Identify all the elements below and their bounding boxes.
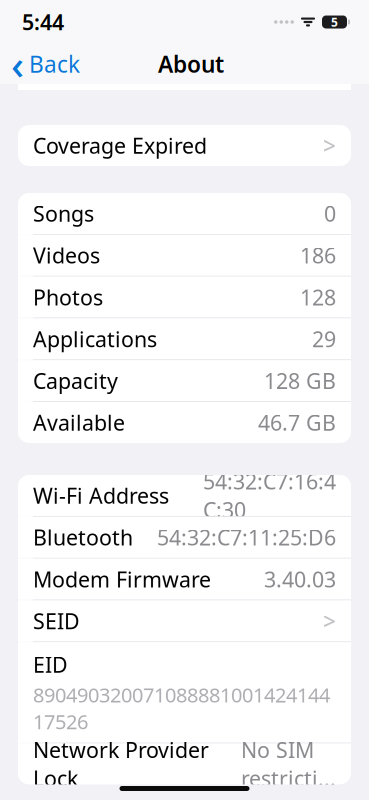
button[interactable]: EID [18, 642, 351, 743]
staticText: 5:44 [22, 8, 64, 36]
button[interactable]: Modem Firmware [18, 559, 351, 600]
button[interactable]: Videos [18, 235, 351, 276]
button[interactable]: ‹ [0, 44, 90, 84]
staticText: Videos [33, 241, 100, 269]
staticText: Modem Firmware [33, 565, 211, 593]
staticText: About [158, 49, 224, 79]
staticText: Applications [33, 325, 157, 353]
staticText: 89049032007108888100142414417526 [33, 681, 330, 735]
button[interactable]: Coverage Expired [18, 125, 351, 166]
staticText: 54:32:C7:11:25:D6 [157, 523, 336, 551]
staticText: Network Provider Lock [33, 736, 209, 792]
button[interactable]: Network Provider Lock [18, 743, 351, 784]
staticText: 128 GB [264, 366, 336, 395]
staticText: No SIM restricti... [241, 736, 336, 792]
staticText: Wi-Fi Address [33, 481, 169, 510]
staticText: 5 [331, 14, 338, 30]
staticText: EID [33, 650, 68, 678]
staticText: Photos [33, 283, 103, 311]
button[interactable]: Songs [18, 193, 351, 234]
staticText: Coverage Expired [33, 131, 207, 160]
staticText: Songs [33, 199, 94, 228]
staticText: 0 [324, 199, 336, 228]
button[interactable]: SEID [18, 600, 351, 641]
button[interactable]: Photos [18, 277, 351, 318]
staticText: 29 [312, 325, 336, 353]
staticText: 186 [300, 241, 336, 269]
staticText: > [323, 606, 336, 636]
staticText: 46.7 GB [258, 408, 336, 437]
staticText: Available [33, 408, 125, 437]
staticText: ‹ [11, 37, 24, 90]
staticText: Capacity [33, 366, 118, 395]
staticText: Bluetooth [33, 523, 133, 551]
button[interactable]: Bluetooth [18, 517, 351, 558]
staticText: SEID [33, 607, 80, 635]
button[interactable]: Wi-Fi Address [18, 475, 351, 516]
button[interactable]: Available [18, 402, 351, 443]
staticText: > [323, 130, 336, 160]
button[interactable]: Capacity [18, 360, 351, 401]
button[interactable]: Applications [18, 318, 351, 359]
staticText: 3.40.03 [264, 565, 336, 593]
staticText: Back [29, 49, 80, 79]
staticText: 128 [300, 283, 336, 311]
staticText: 54:32:C7:16:4C:30 [203, 467, 336, 524]
